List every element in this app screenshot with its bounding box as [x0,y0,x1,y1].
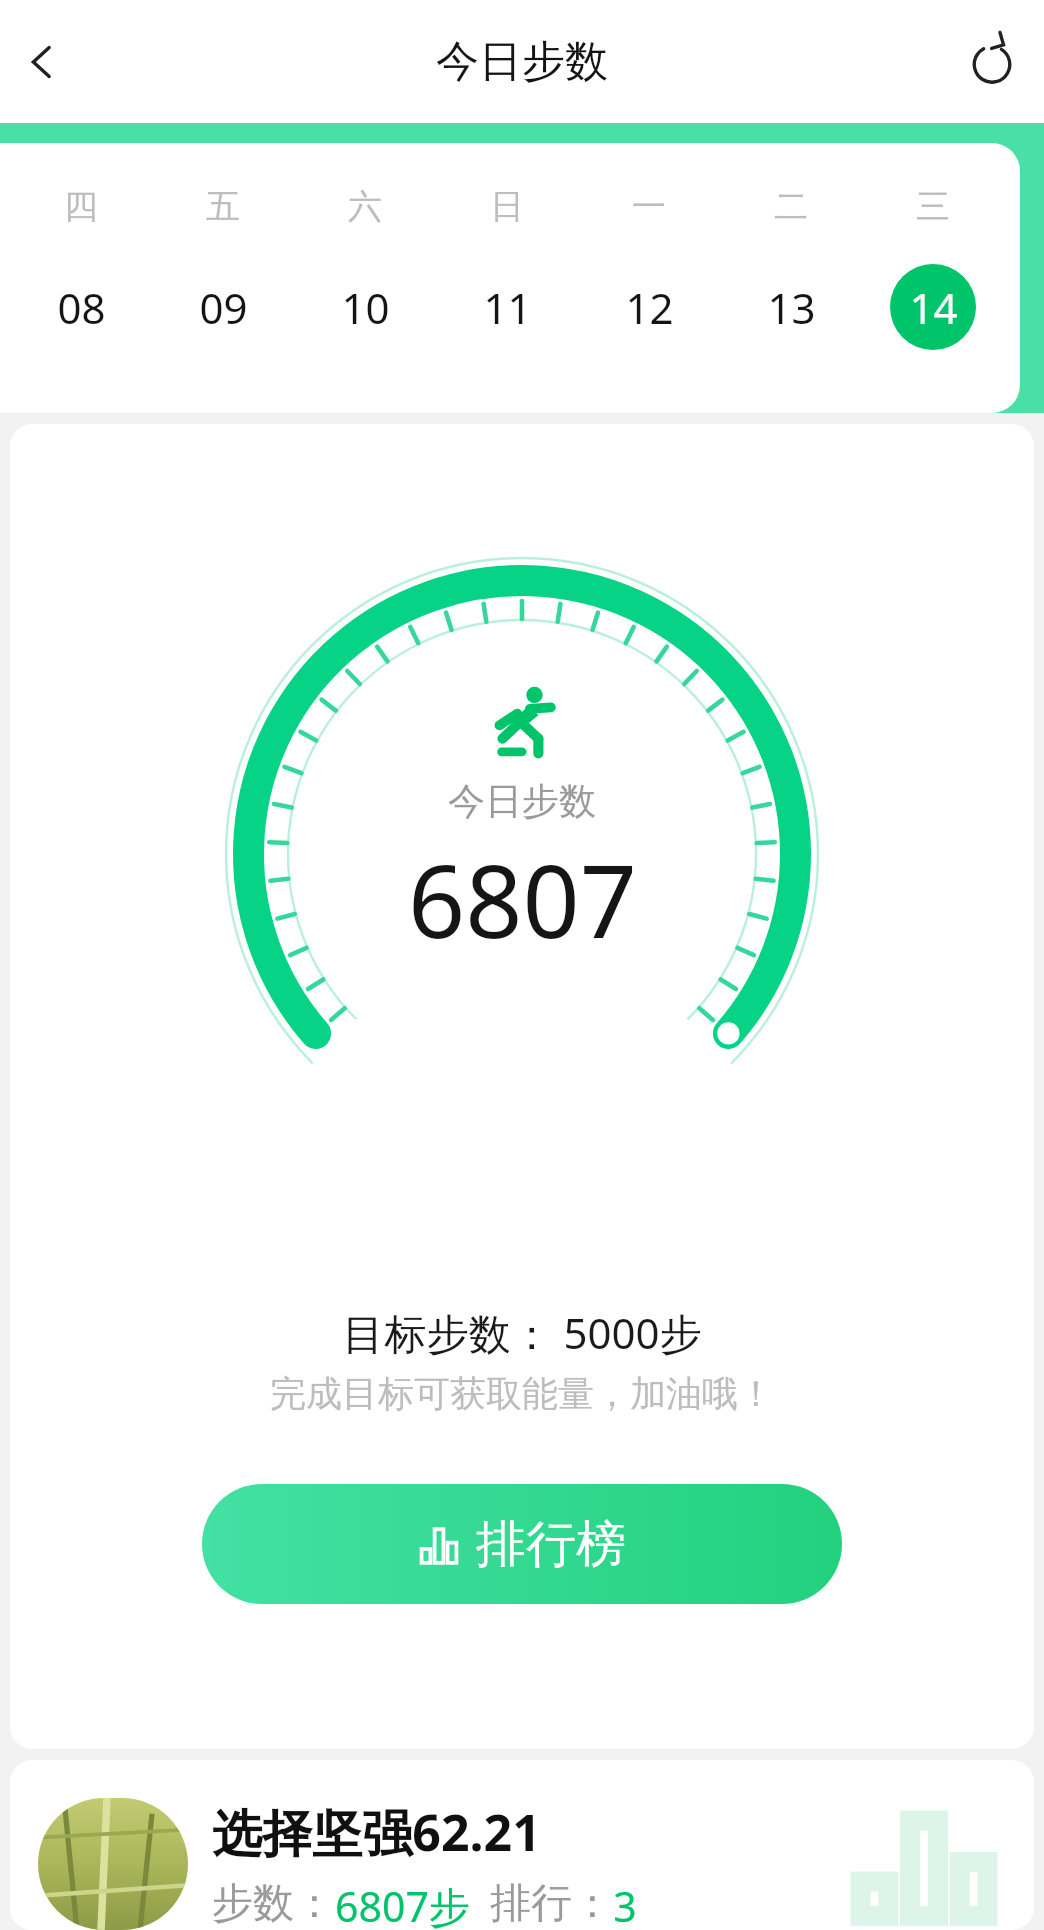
staticText: 六 [348,185,382,228]
staticText: 四 [64,185,98,228]
staticText: 14 [909,279,958,336]
staticText: 步数： [212,1878,335,1930]
staticText: 6807步 [335,1878,470,1930]
staticText: 12 [625,279,674,336]
staticText: 排行榜 [476,1513,626,1576]
button[interactable]: 三 [862,185,1004,350]
button[interactable]: 日 [436,185,578,350]
staticText: 目标步数： 5000步 [342,1304,702,1361]
staticText: 一 [632,185,666,228]
button[interactable]: 四 [10,185,152,350]
button[interactable]: 选择坚强62.21 [10,1760,1034,1930]
staticText: 3 [613,1878,637,1930]
staticText: 09 [199,279,248,336]
staticText: 二 [774,185,808,228]
staticText: 13 [767,279,816,336]
button[interactable]: 一 [578,185,720,350]
button[interactable]: Share [950,20,1034,104]
staticText: 三 [916,185,950,228]
button[interactable]: 排行榜 [202,1484,842,1604]
staticText: 日 [490,185,524,228]
staticText: 今日步数 [436,35,608,89]
button[interactable]: 五 [152,185,294,350]
button[interactable]: 六 [294,185,436,350]
button[interactable]: 二 [720,185,862,350]
staticText: 完成目标可获取能量，加油哦！ [270,1371,774,1416]
staticText: 08 [57,279,106,336]
staticText: 排行： [490,1878,613,1930]
button[interactable]: Back [4,24,80,100]
staticText: 11 [483,279,532,336]
staticText: 选择坚强62.21 [212,1798,541,1866]
staticText: 五 [206,185,240,228]
staticText: 今日步数 [448,778,596,825]
staticText: 10 [341,279,390,336]
staticText: 6807 [408,831,637,967]
